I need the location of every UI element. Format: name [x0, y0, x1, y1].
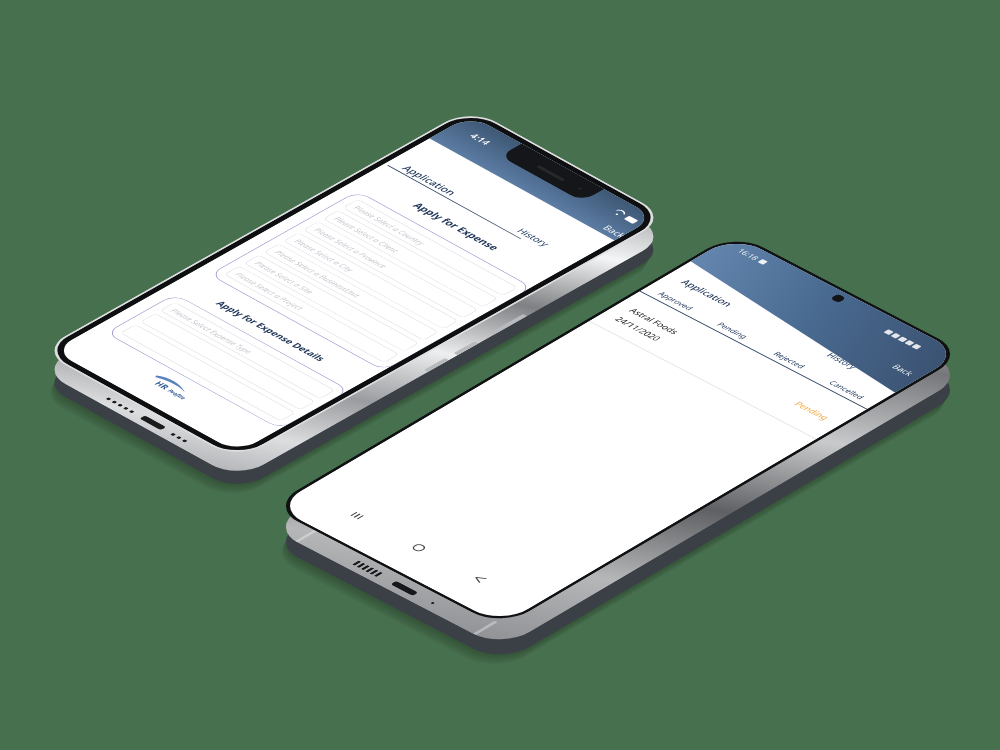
staticText: Back	[600, 223, 629, 239]
staticText: Please Select a City	[292, 237, 356, 273]
button[interactable]: Please Select a City	[283, 232, 459, 330]
button[interactable]: Please Select a Site	[243, 254, 419, 352]
button[interactable]: Astral Foods	[589, 293, 864, 439]
button[interactable]: Back	[885, 360, 922, 380]
staticText: Rejected	[771, 350, 809, 370]
staticText: Application	[399, 163, 461, 198]
staticText: Please Select a Client	[331, 215, 402, 254]
button[interactable]: Back	[595, 220, 631, 240]
button[interactable]: Please Select a Client	[322, 210, 498, 307]
staticText: Apply for Expense	[358, 172, 555, 281]
button[interactable]: Pending	[696, 310, 770, 349]
staticText: Cancelled	[827, 379, 868, 401]
button[interactable]: History	[820, 348, 865, 373]
staticText: Application	[678, 277, 736, 308]
staticText: Pending	[715, 320, 752, 340]
button[interactable]: Please Select Expense Type	[159, 302, 335, 399]
staticText: Please Select a Project	[233, 271, 307, 312]
button[interactable]: History	[509, 223, 558, 251]
button[interactable]: Home	[378, 525, 460, 569]
button[interactable]	[120, 324, 296, 421]
staticText: 16:18	[735, 247, 763, 262]
button[interactable]: Approved	[640, 281, 713, 320]
staticText: Pending	[792, 399, 833, 422]
button[interactable]: Back	[438, 557, 521, 601]
button[interactable]: Please Select a Country	[342, 199, 518, 296]
staticText: History	[824, 351, 861, 371]
staticText: Approved	[656, 290, 697, 312]
button[interactable]: Recent apps	[317, 493, 399, 538]
staticText: Apply for Expense Details	[172, 276, 369, 385]
staticText: History	[514, 226, 553, 248]
button[interactable]: Please Select a Project	[224, 266, 400, 363]
button[interactable]: Please Select a BusinessUnit	[263, 243, 439, 341]
button[interactable]: Please Select a Province	[303, 221, 479, 318]
staticText: 24/11/2020	[613, 315, 664, 342]
staticText: Profile	[165, 388, 188, 401]
staticText: HR	[152, 379, 173, 391]
staticText: 4:14	[466, 131, 494, 147]
staticText: Please Select a Country	[351, 204, 428, 246]
staticText: Please Select a Site	[252, 259, 317, 295]
staticText: Please Select a Province	[312, 226, 390, 270]
staticText: Astral Foods	[627, 306, 682, 335]
button[interactable]: Rejected	[753, 340, 827, 379]
staticText: Please Select Expense Type	[168, 307, 256, 355]
button[interactable]	[140, 313, 316, 410]
button[interactable]: Cancelled	[810, 369, 884, 409]
staticText: Back	[890, 362, 918, 378]
staticText: Please Select a BusinessUnit	[272, 248, 363, 299]
